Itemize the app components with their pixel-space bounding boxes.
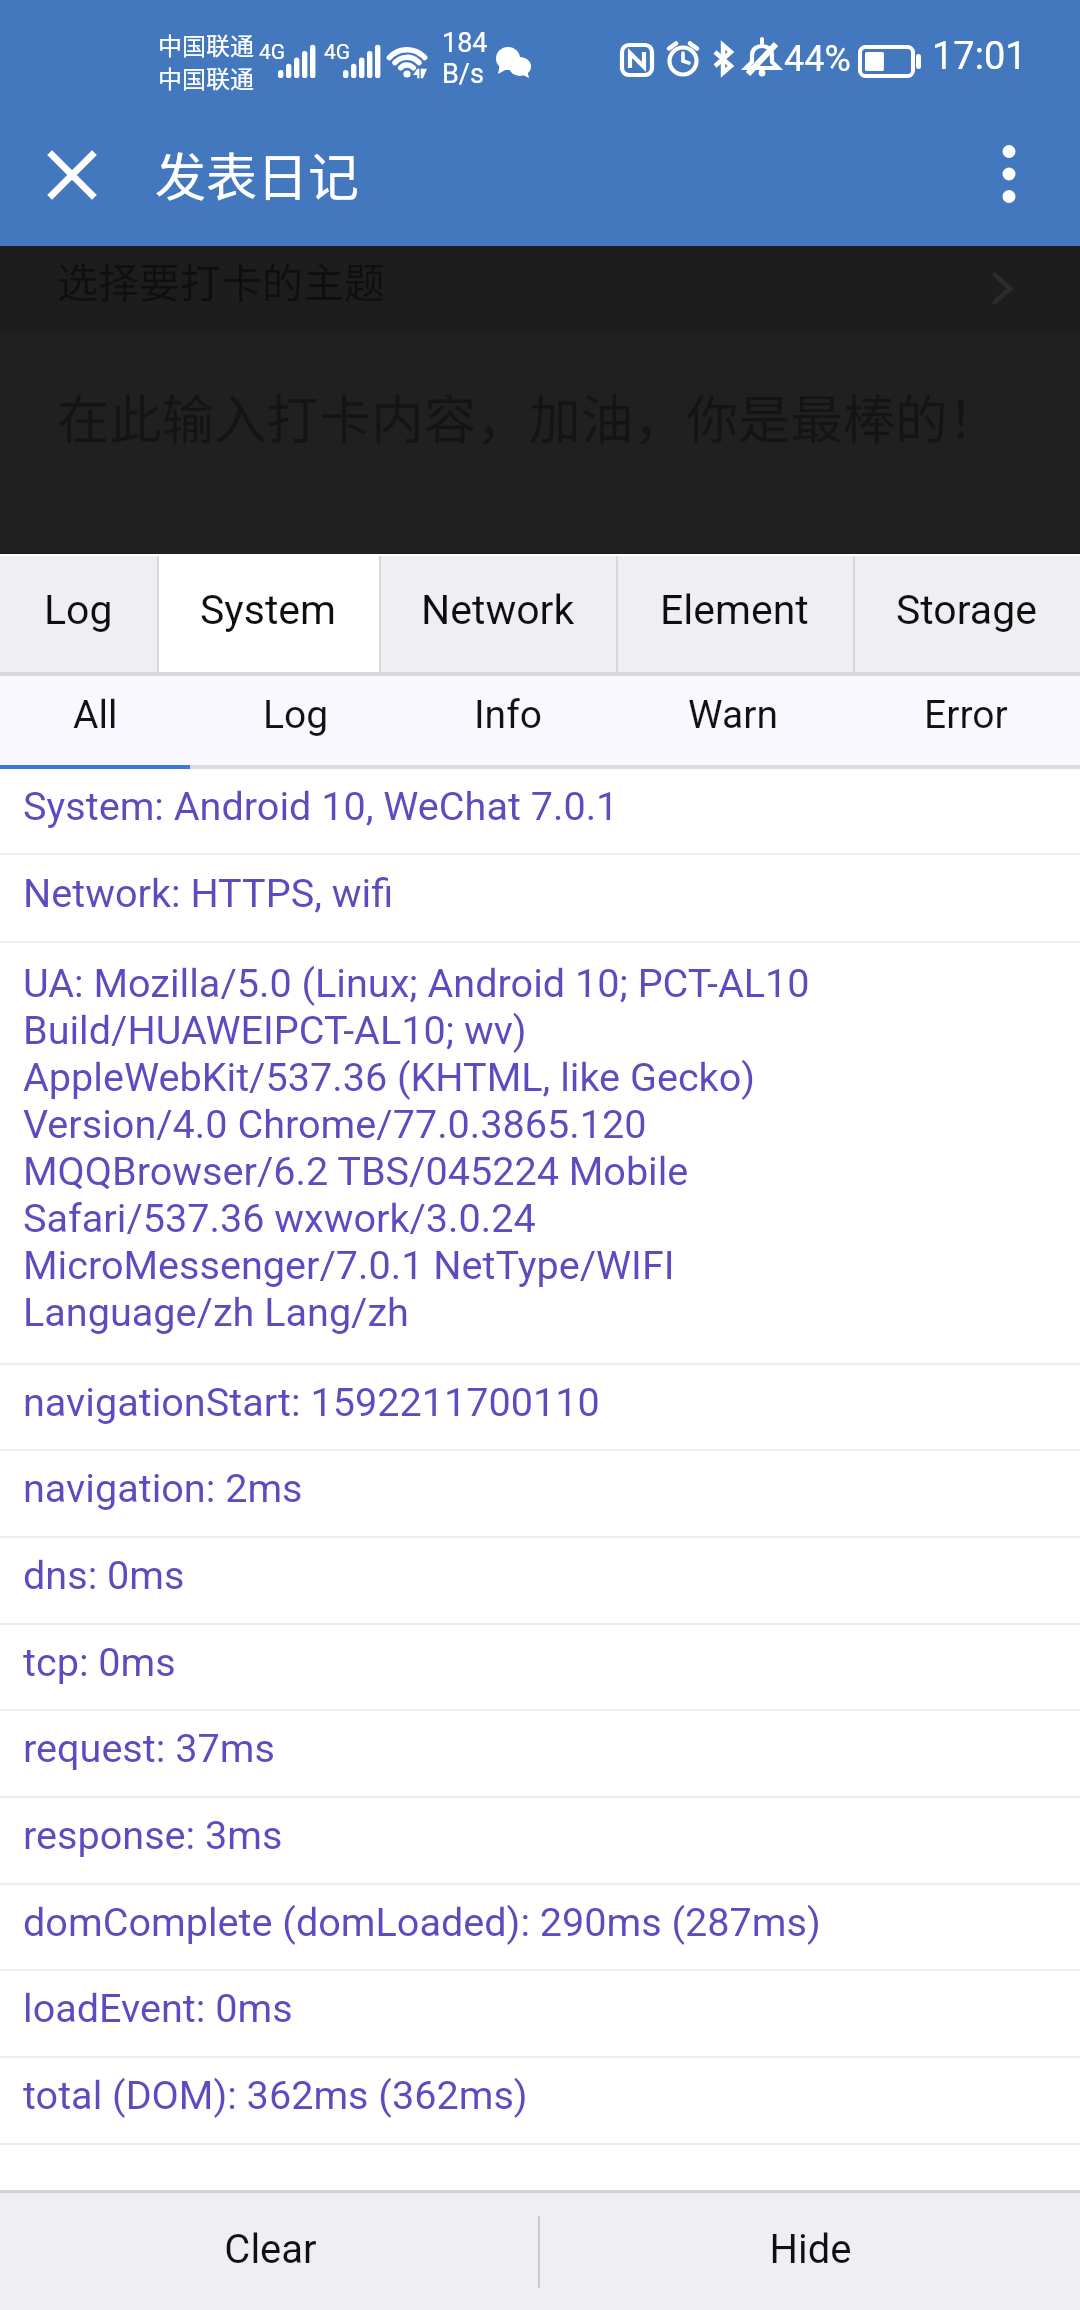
staticText: response: 3ms (23, 1811, 283, 1858)
staticText: System (200, 586, 337, 634)
staticText: Element (660, 586, 809, 634)
staticText: Log (44, 586, 113, 634)
staticText: 17:01 (932, 34, 1027, 79)
staticText: Warn (688, 692, 778, 738)
button[interactable]: Network: HTTPS, wifi (0, 855, 1080, 943)
staticText: System: Android 10, WeChat 7.0.1 (23, 782, 619, 829)
staticText: 选择要打卡的主题 (57, 250, 385, 309)
button[interactable]: loadEvent: 0ms (0, 1971, 1080, 2058)
button[interactable]: Network (379, 556, 616, 672)
staticText: All (73, 692, 118, 738)
button[interactable]: UA: Mozilla/5.0 (Linux; Android 10; PCT-… (0, 943, 1080, 1365)
button[interactable]: dns: 0ms (0, 1538, 1080, 1625)
button[interactable]: Clear (0, 2193, 540, 2310)
button[interactable]: More options (954, 106, 1080, 246)
button[interactable]: Element (616, 556, 853, 672)
button[interactable]: Storage (853, 556, 1080, 672)
staticText: Network (421, 586, 575, 634)
staticText: navigation: 2ms (23, 1464, 303, 1511)
button[interactable]: Info (401, 676, 614, 765)
staticText: tcp: 0ms (23, 1638, 176, 1685)
staticText: Clear (224, 2226, 317, 2273)
button[interactable]: domComplete (domLoaded): 290ms (287ms) (0, 1885, 1080, 1971)
button[interactable]: Log (190, 676, 401, 765)
staticText: 4G (259, 40, 286, 65)
button[interactable]: Warn (614, 676, 851, 765)
staticText: domComplete (domLoaded): 290ms (287ms) (23, 1898, 821, 1945)
staticText: dns: 0ms (23, 1551, 185, 1598)
staticText: navigationStart: 1592211700110 (23, 1378, 600, 1425)
staticText: request: 37ms (23, 1724, 275, 1771)
staticText: Hide (769, 2226, 852, 2273)
button[interactable]: Close (0, 106, 144, 246)
staticText: 在此输入打卡内容，加油，你是最棒的！ (57, 378, 1001, 454)
button[interactable]: navigationStart: 1592211700110 (0, 1365, 1080, 1451)
button[interactable]: System (157, 556, 379, 672)
button[interactable]: Hide (540, 2193, 1080, 2310)
button[interactable]: Log (0, 556, 157, 672)
button[interactable]: request: 37ms (0, 1711, 1080, 1798)
staticText: Network: HTTPS, wifi (23, 869, 394, 916)
staticText: loadEvent: 0ms (23, 1984, 293, 2031)
staticText: 中国联通 (158, 60, 254, 95)
staticText: 中国联通 (158, 27, 254, 62)
button[interactable]: total (DOM): 362ms (362ms) (0, 2058, 1080, 2145)
button[interactable]: System: Android 10, WeChat 7.0.1 (0, 769, 1080, 855)
staticText: 4G (324, 40, 351, 65)
staticText: total (DOM): 362ms (362ms) (23, 2071, 528, 2118)
button[interactable]: All (0, 676, 190, 765)
button[interactable]: navigation: 2ms (0, 1451, 1080, 1538)
staticText: Log (263, 692, 329, 738)
staticText: UA: Mozilla/5.0 (Linux; Android 10; PCT-… (23, 959, 810, 1335)
staticText: 44% (784, 38, 851, 80)
staticText: Storage (896, 586, 1037, 634)
staticText: Info (474, 692, 542, 738)
staticText: 184 (442, 27, 488, 59)
staticText: B/s (442, 58, 484, 90)
button[interactable]: response: 3ms (0, 1798, 1080, 1885)
button[interactable]: tcp: 0ms (0, 1625, 1080, 1711)
staticText: 发表日记 (155, 137, 360, 211)
button[interactable]: Error (851, 676, 1080, 765)
staticText: Error (924, 692, 1008, 738)
